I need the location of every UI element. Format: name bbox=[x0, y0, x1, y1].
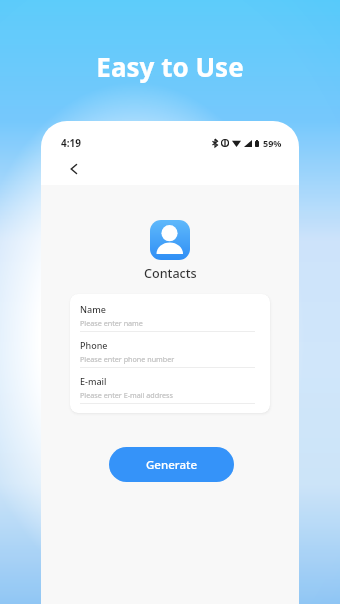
staticText: Please enter E-mail address bbox=[80, 390, 173, 400]
staticText: Name bbox=[80, 303, 106, 315]
button[interactable]: Generate bbox=[109, 447, 234, 482]
staticText: 59% bbox=[263, 137, 282, 149]
staticText: Contacts bbox=[144, 265, 197, 282]
button[interactable]: Back bbox=[64, 158, 86, 180]
staticText: E-mail bbox=[80, 375, 107, 387]
staticText: Please enter phone number bbox=[80, 354, 175, 364]
staticText: Generate bbox=[146, 457, 197, 473]
staticText: Easy to Use bbox=[0, 49, 340, 84]
staticText: Phone bbox=[80, 339, 108, 351]
staticText: Please enter name bbox=[80, 318, 143, 328]
staticText: 4:19 bbox=[61, 136, 81, 150]
